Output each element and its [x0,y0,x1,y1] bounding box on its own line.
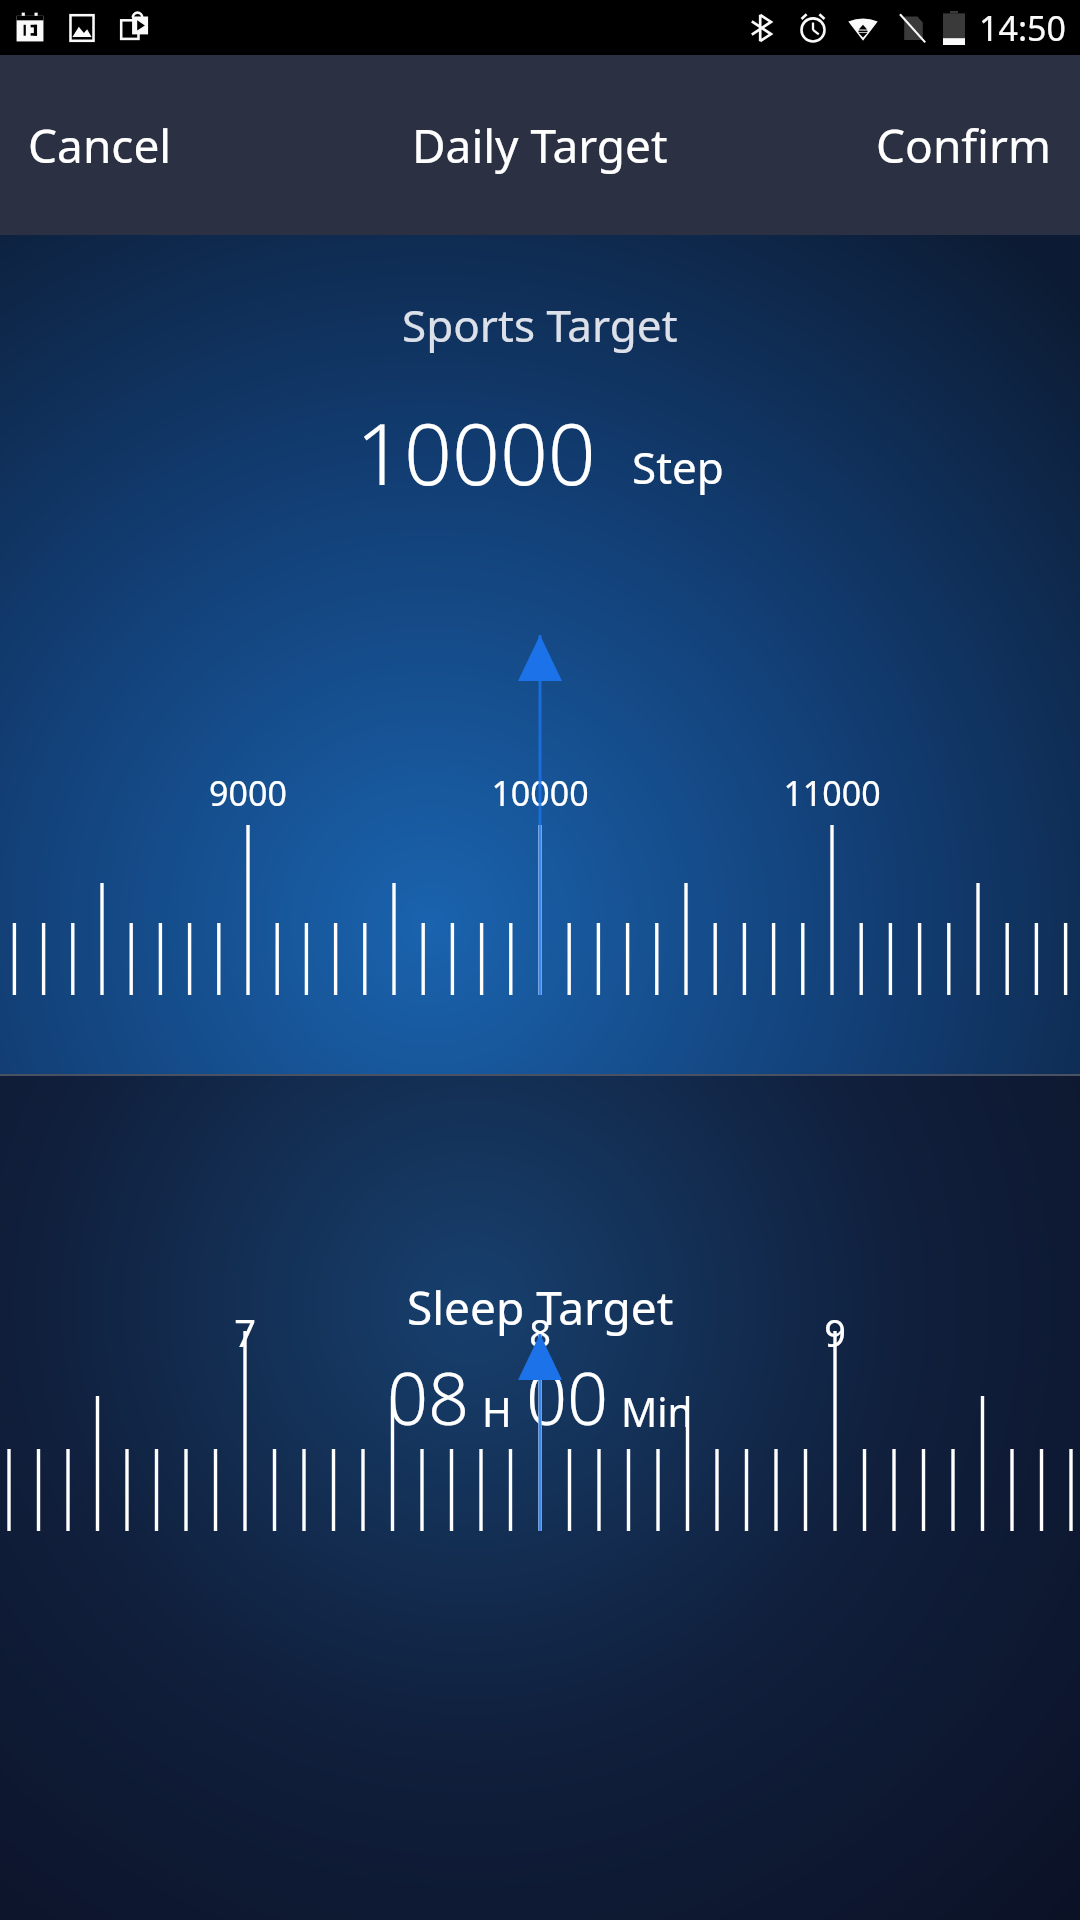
staticText: Sports Target [402,295,678,355]
staticText: 00 [526,1348,609,1446]
button[interactable]: Confirm [848,94,1080,197]
button[interactable]: Cancel [0,94,200,197]
button[interactable]: Sleep Target [0,1076,1080,1920]
staticText: Min [621,1384,693,1438]
staticText: 9000 [209,770,287,816]
staticText: Cancel [28,114,172,177]
staticText: 14:50 [979,5,1066,51]
staticText: 08 [387,1348,470,1446]
button[interactable]: Sports Target [0,235,1080,1074]
staticText: 8 [529,1306,551,1358]
staticText: 11000 [783,770,881,816]
staticText: 10000 [491,770,589,816]
staticText: 10000 [356,395,596,509]
staticText: 7 [234,1306,256,1358]
staticText: 9 [824,1306,846,1358]
staticText: Step [632,437,724,497]
staticText: Confirm [876,114,1052,177]
staticText: Daily Target [412,114,668,177]
staticText: H [482,1384,512,1438]
staticText: Sleep Target [407,1276,674,1339]
